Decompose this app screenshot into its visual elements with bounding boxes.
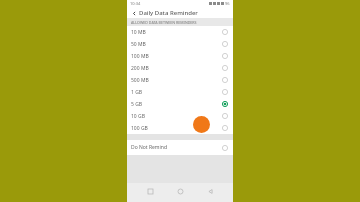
staticText: 100 GB [131,125,222,132]
staticText: Daily Data Reminder [139,9,198,17]
button[interactable]: 10 GB [127,110,233,122]
button[interactable]: Home [173,184,187,198]
button[interactable]: 200 MB [127,62,233,74]
staticText: 1 GB [131,89,222,96]
staticText: ALLOWED DATA BETWEEN REMINDERS [131,20,197,25]
button[interactable]: 50 MB [127,38,233,50]
staticText: Do Not Remind [131,144,222,151]
staticText: 500 MB [131,77,222,84]
staticText: 10:34 [130,1,141,6]
button[interactable]: 10 MB [127,26,233,38]
button[interactable]: Back [130,9,138,17]
staticText: 96 [225,1,230,6]
button[interactable]: 500 MB [127,74,233,86]
button[interactable]: 100 MB [127,50,233,62]
button[interactable]: 100 GB [127,122,233,134]
button[interactable]: Recents [143,184,157,198]
staticText: 10 GB [131,113,222,120]
staticText: 200 MB [131,65,222,72]
button[interactable]: Do Not Remind [127,140,233,155]
button[interactable]: Back [203,184,217,198]
staticText: 100 MB [131,53,222,60]
staticText: 50 MB [131,41,222,48]
button[interactable]: 1 GB [127,86,233,98]
staticText: 10 MB [131,29,222,36]
button[interactable]: 5 GB [127,98,233,110]
other: Touch indicator [193,116,210,133]
staticText: 5 GB [131,101,222,108]
